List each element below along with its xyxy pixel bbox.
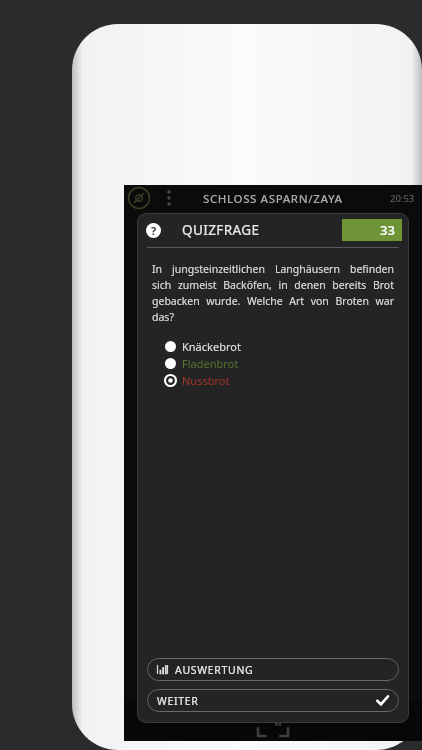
button[interactable]: Nussbrot (137, 372, 409, 389)
staticText: 20:53 (390, 192, 415, 205)
staticText: 33 (380, 221, 395, 239)
staticText: WEITER (157, 694, 199, 708)
button[interactable]: WEITER (147, 689, 399, 712)
staticText: Nussbrot (182, 373, 230, 388)
staticText: QUIZFRAGE (182, 221, 260, 239)
button[interactable]: More options (158, 185, 180, 211)
staticText: HILFE (328, 705, 357, 718)
staticText: Knäckebrot (182, 339, 241, 354)
button[interactable]: Scan QR code (255, 703, 291, 739)
staticText: AUSWERTUNG (175, 663, 254, 677)
staticText: ? (151, 223, 157, 238)
staticText: Fladenbrot (182, 356, 239, 371)
staticText: PLAN (172, 705, 199, 718)
button[interactable]: Fladenbrot (137, 355, 409, 372)
button[interactable]: Knäckebrot (137, 338, 409, 355)
staticText: SCHLOSS ASPARN/ZAYA (203, 191, 343, 207)
staticText: In jungsteinzeitlichen Langhäusern befin… (152, 262, 394, 324)
button[interactable]: AUSWERTUNG (147, 658, 399, 681)
